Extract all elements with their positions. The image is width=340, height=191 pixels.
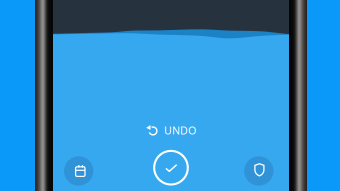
button[interactable]: Confirm [154,151,188,185]
button[interactable]: UNDO [137,117,205,143]
button[interactable]: Privacy [244,156,273,186]
button[interactable]: Calendar [64,156,93,186]
staticText: UNDO [164,123,196,137]
